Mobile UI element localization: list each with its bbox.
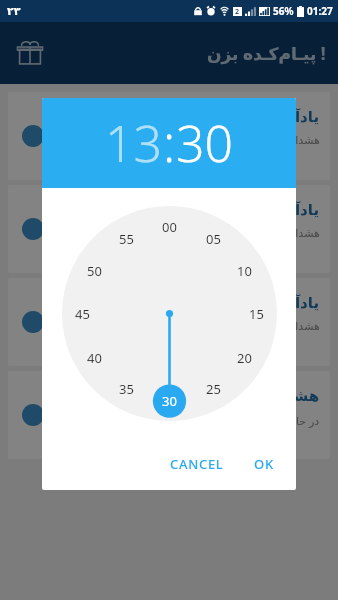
staticText: 00: [162, 218, 177, 236]
staticText: 15: [249, 305, 264, 323]
staticText: یادآور: [277, 201, 320, 218]
staticText: 2: [235, 7, 240, 16]
button[interactable]: یادآور: [8, 278, 330, 366]
staticText: 13: [105, 109, 163, 177]
staticText: CANCEL: [170, 455, 224, 473]
staticText: یادآور: [277, 108, 320, 125]
staticText: 30: [162, 392, 177, 410]
button[interactable]: یادآور: [8, 92, 330, 180]
staticText: یادآور: [277, 294, 320, 311]
button[interactable]: Gift: [8, 31, 52, 75]
staticText: 10: [237, 262, 252, 280]
staticText: 01:27: [307, 4, 333, 18]
staticText: 30: [176, 109, 234, 177]
staticText: 50: [87, 262, 102, 280]
staticText: 45: [75, 305, 90, 323]
staticText: 40: [87, 349, 102, 367]
staticText: هشدار: [271, 387, 320, 404]
staticText: پیـام‌کـده بزن !: [207, 42, 326, 65]
staticText: 56%: [273, 4, 294, 18]
button[interactable]: یادآور: [8, 185, 330, 273]
staticText: OK: [254, 455, 274, 473]
staticText: 35: [119, 380, 134, 398]
staticText: :: [163, 109, 176, 177]
staticText: در حال: [288, 413, 320, 428]
button[interactable]: هشدار: [8, 371, 330, 459]
staticText: ۲۳: [7, 5, 21, 18]
staticText: هشدار: [290, 134, 320, 147]
staticText: هشدار: [290, 227, 320, 240]
staticText: 20: [237, 349, 252, 367]
button[interactable]: OK: [246, 447, 282, 481]
button[interactable]: CANCEL: [162, 447, 232, 481]
staticText: 05: [206, 230, 221, 248]
staticText: 55: [119, 230, 134, 248]
staticText: هشدار: [290, 320, 320, 333]
staticText: 25: [206, 380, 221, 398]
